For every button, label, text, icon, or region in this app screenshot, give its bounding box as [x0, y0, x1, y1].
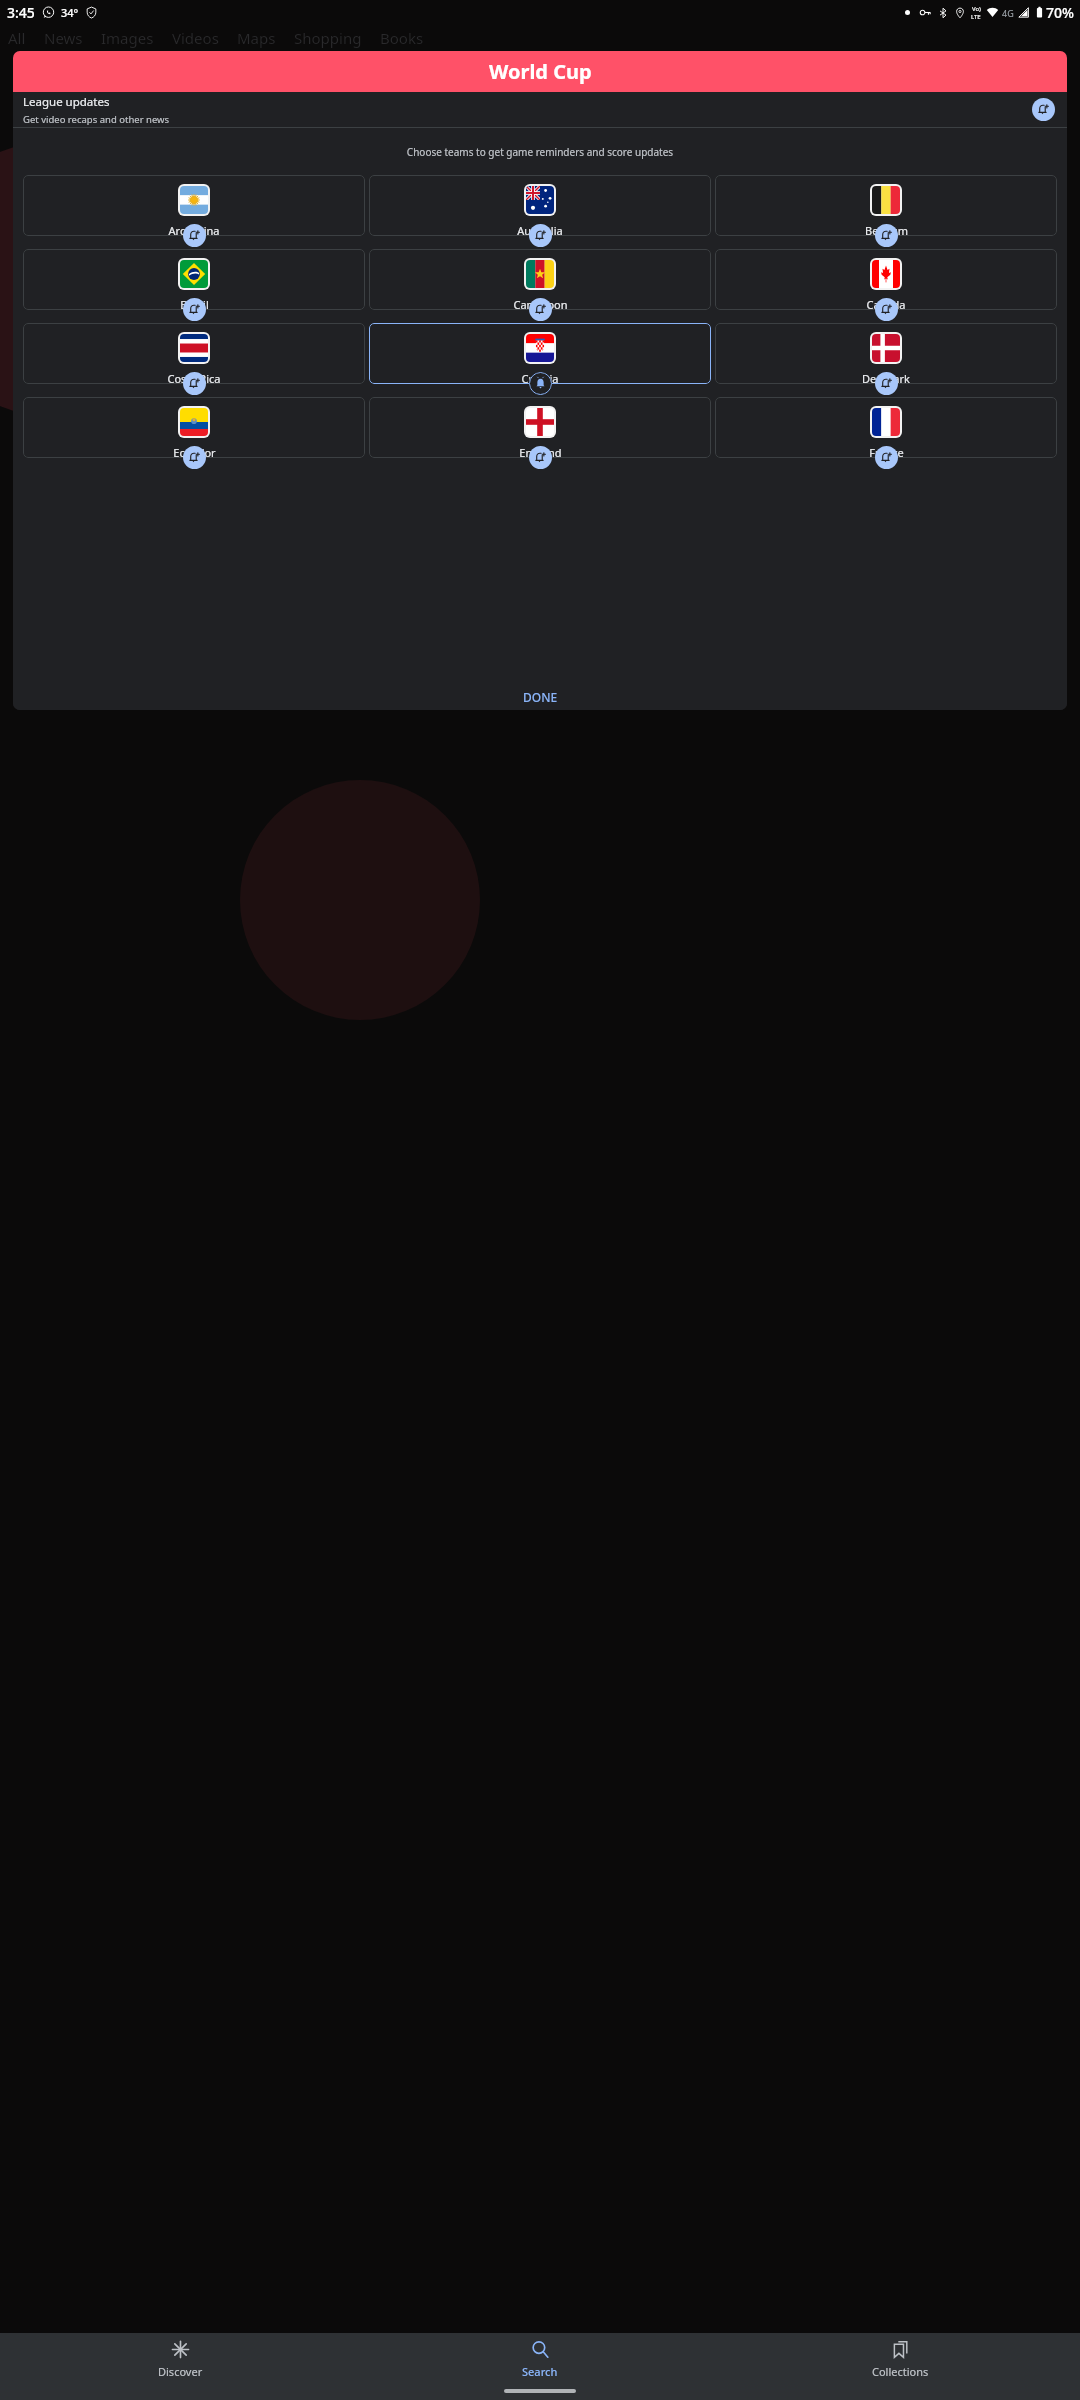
button[interactable]: Collections: [720, 2333, 1080, 2385]
staticText: Maps: [237, 28, 276, 48]
staticText: Argentina: [168, 223, 220, 236]
staticText: Costa Rica: [167, 371, 221, 384]
button[interactable]: Add Belgium notifications: [875, 224, 898, 247]
button[interactable]: Canada: [715, 249, 1057, 310]
staticText: Choose teams to get game reminders and s…: [13, 145, 1067, 159]
staticText: DONE: [523, 689, 558, 705]
staticText: LTE: [971, 13, 981, 21]
staticText: Discover: [158, 2364, 203, 2379]
staticText: Images: [101, 28, 154, 48]
button[interactable]: England: [369, 397, 711, 458]
button[interactable]: Discover: [0, 2333, 360, 2385]
staticText: 4G: [1002, 7, 1014, 19]
staticText: 70%: [1046, 3, 1074, 22]
button[interactable]: Add Ecuador notifications: [183, 446, 206, 469]
button[interactable]: DONE: [13, 683, 1067, 710]
button[interactable]: Argentina: [23, 175, 365, 236]
button[interactable]: Belgium: [715, 175, 1057, 236]
button[interactable]: Add Brazil notifications: [183, 298, 206, 321]
staticText: League updates: [23, 94, 110, 110]
staticText: Croatia: [521, 371, 559, 384]
button[interactable]: Costa Rica: [23, 323, 365, 384]
staticText: Belgium: [865, 223, 908, 236]
button[interactable]: Cameroon: [369, 249, 711, 310]
staticText: Ecuador: [173, 445, 216, 458]
button[interactable]: League updates: [13, 92, 1067, 127]
staticText: Vo): [972, 5, 981, 13]
staticText: England: [519, 445, 562, 458]
button[interactable]: Search: [360, 2333, 720, 2385]
staticText: Search: [522, 2364, 558, 2379]
staticText: Shopping: [294, 28, 362, 48]
staticText: Australia: [517, 223, 563, 236]
staticText: Cameroon: [513, 297, 568, 310]
staticText: All: [8, 28, 26, 48]
button[interactable]: Denmark: [715, 323, 1057, 384]
button[interactable]: Add England notifications: [529, 446, 552, 469]
staticText: Get video recaps and other news: [23, 113, 170, 126]
staticText: France: [869, 445, 904, 458]
button[interactable]: Add Denmark notifications: [875, 372, 898, 395]
button[interactable]: Remove Croatia notifications: [529, 372, 552, 395]
button[interactable]: Brazil: [23, 249, 365, 310]
button[interactable]: Add France notifications: [875, 446, 898, 469]
staticText: World Cup: [489, 58, 592, 85]
button[interactable]: Ecuador: [23, 397, 365, 458]
staticText: 3:45: [7, 3, 35, 22]
button[interactable]: Add Costa Rica notifications: [183, 372, 206, 395]
button[interactable]: Add Argentina notifications: [183, 224, 206, 247]
staticText: Canada: [866, 297, 906, 310]
button[interactable]: Add Cameroon notifications: [529, 298, 552, 321]
staticText: News: [44, 28, 83, 48]
staticText: Denmark: [862, 371, 910, 384]
button[interactable]: Australia: [369, 175, 711, 236]
button[interactable]: Add Australia notifications: [529, 224, 552, 247]
staticText: Videos: [172, 28, 219, 48]
button[interactable]: Croatia: [369, 323, 711, 384]
staticText: 34°: [61, 5, 79, 20]
staticText: Brazil: [180, 297, 209, 310]
staticText: Books: [380, 28, 424, 48]
button[interactable]: Add league updates notification: [1032, 98, 1055, 121]
staticText: Collections: [872, 2364, 929, 2379]
button[interactable]: Add Canada notifications: [875, 298, 898, 321]
button[interactable]: France: [715, 397, 1057, 458]
